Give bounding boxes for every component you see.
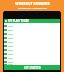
button[interactable] xyxy=(4,52,60,56)
button[interactable] xyxy=(4,60,60,64)
staticText: MY PLAN TODAY xyxy=(8,19,29,23)
button[interactable] xyxy=(4,48,60,52)
button[interactable] xyxy=(4,64,60,65)
button[interactable] xyxy=(4,56,60,60)
staticText: NUTRITION + FITNESS APP xyxy=(18,7,47,10)
button[interactable]: GET STARTED xyxy=(4,65,60,70)
button[interactable]: Profile xyxy=(4,19,60,23)
staticText: GET STARTED xyxy=(24,66,41,70)
staticText: WORKOUT REWARDS xyxy=(15,2,50,6)
button[interactable] xyxy=(4,32,60,36)
button[interactable] xyxy=(4,44,60,48)
button[interactable] xyxy=(4,36,60,40)
button[interactable] xyxy=(4,28,60,32)
button[interactable] xyxy=(4,40,60,44)
button[interactable] xyxy=(4,24,60,28)
